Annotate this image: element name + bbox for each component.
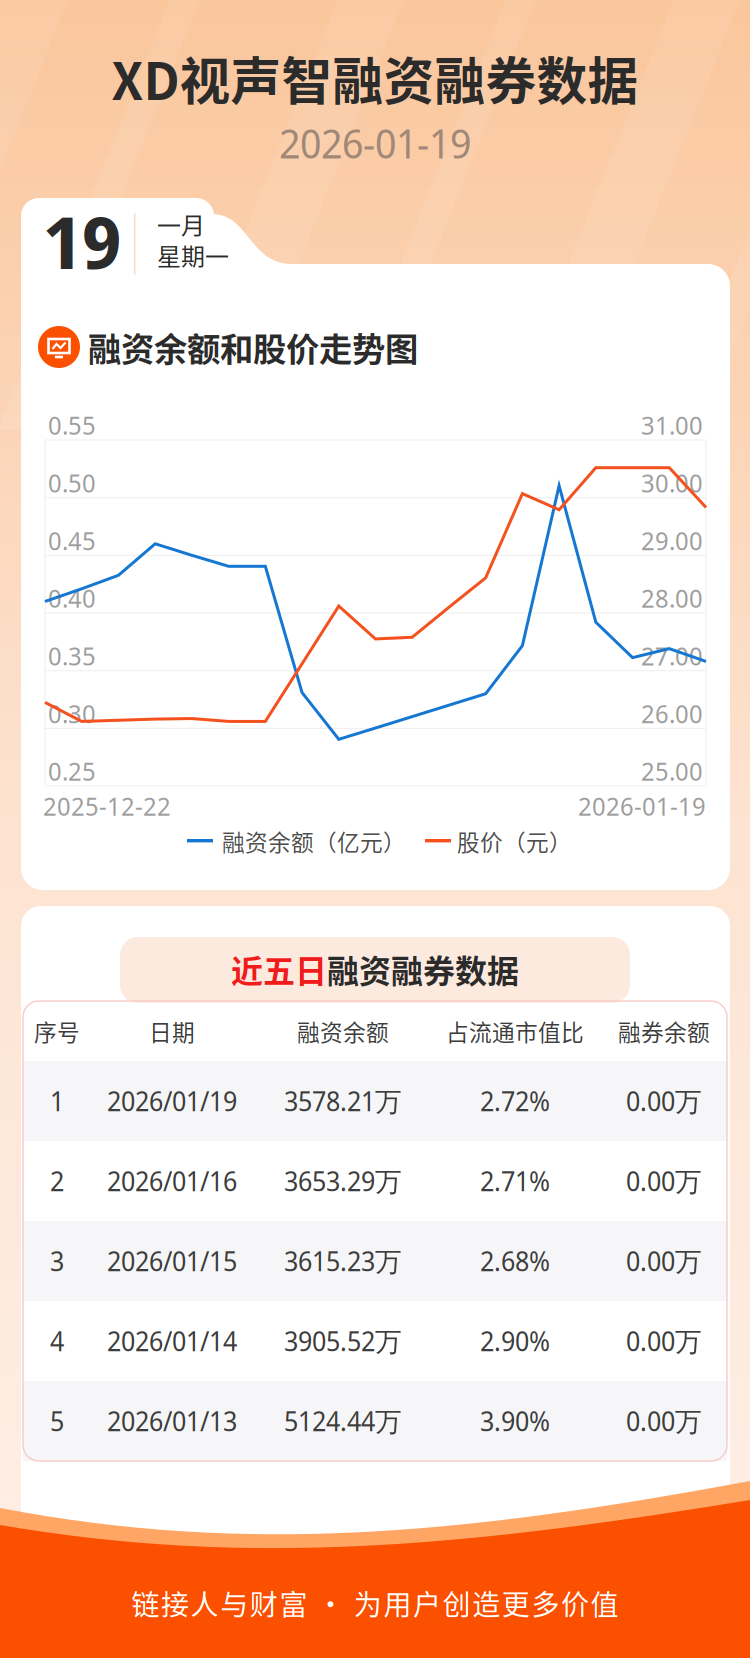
staticText: 2026/01/14 [107,1323,237,1359]
staticText: 融券余额 [618,1015,710,1047]
staticText: 序号 [34,1015,80,1047]
staticText: 0.00万 [626,1163,702,1199]
staticText: 0.00万 [626,1083,702,1119]
staticText: 链接人与财富 · 为用户创造更多价值 [131,1583,619,1623]
staticText: 2.68% [480,1243,550,1279]
staticText: 27.00 [641,638,703,673]
staticText: 0.00万 [626,1403,702,1439]
staticText: 1 [50,1083,64,1119]
staticText: 融资余额 [297,1015,389,1047]
staticText: 股价（元） [457,825,572,857]
staticText: 3905.52万 [284,1323,402,1359]
staticText: 3.90% [480,1403,550,1439]
staticText: 融资融券数据 [327,946,519,992]
staticText: 25.00 [641,754,703,788]
staticText: 日期 [149,1015,195,1047]
staticText: 0.40 [48,581,96,615]
staticText: 26.00 [641,696,703,731]
staticText: 2.71% [480,1163,550,1199]
staticText: 30.00 [641,465,703,500]
staticText: 3 [50,1243,64,1279]
staticText: 融资余额和股价走势图 [88,323,418,371]
staticText: 星期一 [157,238,229,272]
staticText: 0.55 [48,408,96,442]
staticText: 2026-01-19 [578,789,706,823]
staticText: 2026-01-19 [279,116,471,170]
staticText: 0.45 [48,523,96,558]
staticText: 28.00 [641,581,703,615]
staticText: 2.72% [480,1083,550,1119]
staticText: 2.90% [480,1323,550,1359]
staticText: 占流通市值比 [446,1015,584,1047]
staticText: 0.35 [48,638,96,673]
staticText: 5124.44万 [284,1403,402,1439]
staticText: 2 [50,1163,64,1199]
staticText: 2026/01/16 [107,1163,237,1199]
staticText: 0.30 [48,696,96,731]
staticText: 4 [50,1323,64,1359]
staticText: 0.00万 [626,1243,702,1279]
staticText: 近五日 [231,946,327,992]
staticText: 2026/01/13 [107,1403,237,1439]
staticText: 2025-12-22 [43,789,171,823]
staticText: 融资余额（亿元） [222,825,406,857]
staticText: 2026/01/19 [107,1083,237,1119]
staticText: 0.25 [48,754,96,788]
staticText: 31.00 [641,408,703,442]
staticText: 19 [43,192,121,290]
staticText: 0.00万 [626,1323,702,1359]
staticText: 3653.29万 [284,1163,402,1199]
staticText: 3615.23万 [284,1243,402,1279]
staticText: 3578.21万 [284,1083,402,1119]
staticText: 一月 [157,207,205,241]
staticText: XD视声智融资融券数据 [111,41,638,115]
staticText: 2026/01/15 [107,1243,237,1279]
staticText: 0.50 [48,465,96,500]
staticText: 29.00 [641,523,703,558]
staticText: 5 [50,1403,64,1439]
